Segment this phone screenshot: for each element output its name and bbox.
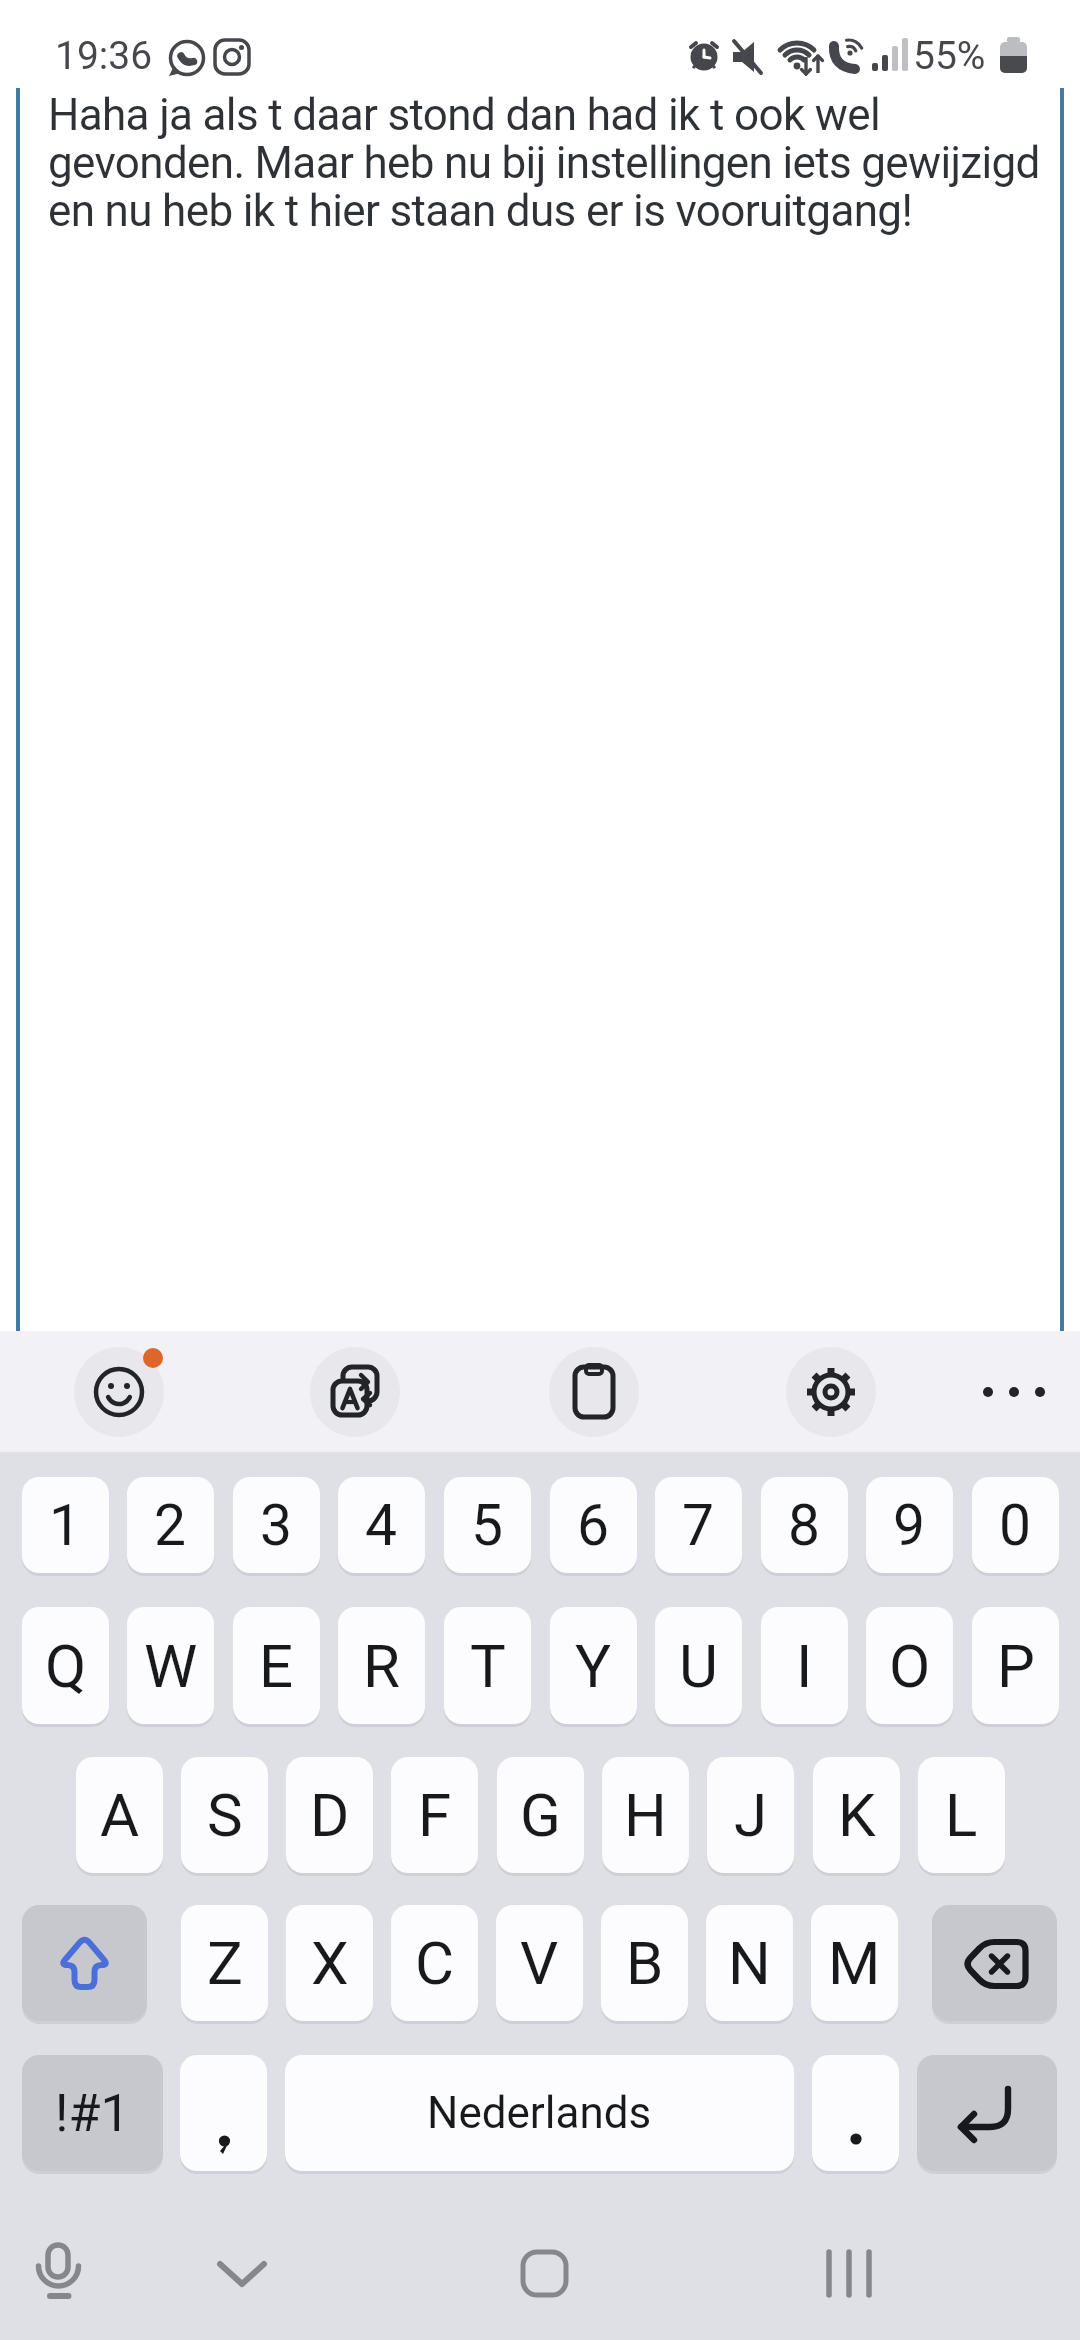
staticText: H bbox=[624, 1780, 667, 1850]
button[interactable] bbox=[810, 2240, 890, 2310]
staticText: 55% bbox=[913, 33, 986, 79]
button[interactable]: N bbox=[706, 1905, 793, 2021]
staticText: Q bbox=[45, 1631, 87, 1701]
staticText: M bbox=[828, 1928, 881, 1998]
button[interactable]: 1 bbox=[22, 1477, 109, 1573]
button[interactable] bbox=[960, 1360, 1070, 1424]
button[interactable]: I bbox=[761, 1607, 848, 1724]
button[interactable]: H bbox=[602, 1757, 689, 1873]
staticText: R bbox=[363, 1631, 400, 1701]
button[interactable]: !#1 bbox=[22, 2055, 163, 2171]
button[interactable]: D bbox=[286, 1757, 373, 1873]
staticText: B bbox=[626, 1928, 664, 1998]
staticText: N bbox=[728, 1928, 771, 1998]
staticText: F bbox=[418, 1780, 452, 1850]
button[interactable]: O bbox=[866, 1607, 953, 1724]
button[interactable] bbox=[812, 2055, 899, 2171]
button[interactable]: 2 bbox=[127, 1477, 214, 1573]
staticText: 19:36 bbox=[55, 33, 153, 79]
button[interactable] bbox=[786, 1347, 876, 1437]
staticText: D bbox=[310, 1780, 350, 1850]
staticText: !#1 bbox=[55, 2083, 130, 2144]
button[interactable] bbox=[74, 1347, 164, 1437]
button[interactable]: S bbox=[181, 1757, 268, 1873]
staticText: X bbox=[311, 1928, 349, 1998]
staticText: 3 bbox=[260, 1492, 293, 1559]
button[interactable]: M bbox=[811, 1905, 898, 2021]
button[interactable] bbox=[310, 1347, 400, 1437]
button[interactable]: G bbox=[497, 1757, 584, 1873]
staticText: Z bbox=[207, 1928, 243, 1998]
button[interactable]: L bbox=[918, 1757, 1005, 1873]
button[interactable] bbox=[549, 1347, 639, 1437]
staticText: V bbox=[520, 1928, 559, 1998]
staticText: Nederlands bbox=[427, 2087, 652, 2139]
button[interactable]: 8 bbox=[761, 1477, 848, 1573]
button[interactable]: Nederlands bbox=[285, 2055, 794, 2171]
button[interactable] bbox=[180, 2055, 267, 2171]
staticText: Y bbox=[575, 1631, 612, 1701]
button[interactable]: Haha ja als t daar stond dan had ik t oo… bbox=[20, 88, 1060, 1331]
staticText: G bbox=[520, 1780, 561, 1850]
staticText: T bbox=[470, 1631, 506, 1701]
staticText: P bbox=[997, 1631, 1035, 1701]
button[interactable]: 6 bbox=[550, 1477, 637, 1573]
button[interactable]: 4 bbox=[338, 1477, 425, 1573]
button[interactable]: V bbox=[496, 1905, 583, 2021]
button[interactable]: 7 bbox=[655, 1477, 742, 1573]
staticText: O bbox=[889, 1631, 931, 1701]
button[interactable]: Y bbox=[550, 1607, 637, 1724]
button[interactable]: U bbox=[655, 1607, 742, 1724]
button[interactable]: 0 bbox=[972, 1477, 1059, 1573]
button[interactable]: T bbox=[444, 1607, 531, 1724]
staticText: 0 bbox=[999, 1492, 1032, 1559]
button[interactable]: 3 bbox=[233, 1477, 320, 1573]
button[interactable] bbox=[22, 1905, 147, 2021]
staticText: A bbox=[100, 1780, 140, 1850]
button[interactable]: X bbox=[286, 1905, 373, 2021]
button[interactable]: 5 bbox=[444, 1477, 531, 1573]
button[interactable]: B bbox=[601, 1905, 688, 2021]
button[interactable]: R bbox=[338, 1607, 425, 1724]
button[interactable]: J bbox=[707, 1757, 794, 1873]
button[interactable] bbox=[205, 2240, 281, 2310]
staticText: 7 bbox=[682, 1492, 715, 1559]
staticText: 4 bbox=[365, 1492, 398, 1559]
button[interactable]: W bbox=[127, 1607, 214, 1724]
staticText: J bbox=[734, 1780, 768, 1850]
staticText: 1 bbox=[49, 1492, 82, 1559]
staticText: 9 bbox=[893, 1492, 926, 1559]
staticText: L bbox=[945, 1780, 978, 1850]
staticText: I bbox=[796, 1631, 813, 1701]
staticText: C bbox=[415, 1928, 455, 1998]
button[interactable] bbox=[505, 2240, 585, 2310]
button[interactable]: A bbox=[76, 1757, 163, 1873]
staticText: 2 bbox=[154, 1492, 187, 1559]
button[interactable] bbox=[932, 1905, 1057, 2021]
staticText: W bbox=[144, 1631, 198, 1701]
button[interactable]: Z bbox=[181, 1905, 268, 2021]
button[interactable]: E bbox=[233, 1607, 320, 1724]
staticText: 5 bbox=[471, 1492, 504, 1559]
staticText: E bbox=[259, 1631, 294, 1701]
button[interactable]: P bbox=[972, 1607, 1059, 1724]
button[interactable] bbox=[917, 2055, 1057, 2171]
button[interactable] bbox=[20, 2240, 96, 2310]
staticText: 8 bbox=[788, 1492, 821, 1559]
staticText: 6 bbox=[577, 1492, 610, 1559]
button[interactable]: K bbox=[813, 1757, 900, 1873]
button[interactable]: 9 bbox=[866, 1477, 953, 1573]
button[interactable]: C bbox=[391, 1905, 478, 2021]
staticText: S bbox=[207, 1780, 243, 1850]
button[interactable]: Q bbox=[22, 1607, 109, 1724]
button[interactable]: F bbox=[391, 1757, 478, 1873]
staticText: U bbox=[679, 1631, 718, 1701]
staticText: K bbox=[838, 1780, 876, 1850]
staticText: Haha ja als t daar stond dan had ik t oo… bbox=[48, 89, 1040, 237]
